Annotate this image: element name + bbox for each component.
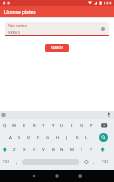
staticText: R (33, 122, 36, 128)
staticText: License plates (4, 9, 36, 15)
button[interactable]: ! (77, 144, 87, 154)
button[interactable]: Y (48, 120, 58, 130)
button[interactable]: D (24, 132, 34, 142)
staticText: T (42, 122, 45, 128)
button[interactable] (5, 22, 109, 36)
staticText: Q (3, 122, 7, 128)
button[interactable]: E (19, 120, 29, 130)
staticText: F (37, 134, 40, 140)
staticText: P (90, 122, 93, 128)
staticText: G (46, 134, 50, 140)
staticText: ? (90, 146, 92, 152)
staticText: A (9, 134, 12, 140)
button[interactable]: Z (9, 144, 19, 154)
button[interactable]: R (29, 120, 39, 130)
button[interactable] (48, 170, 66, 182)
button[interactable]: O (77, 120, 87, 130)
staticText: C (33, 146, 36, 152)
staticText: O (80, 122, 84, 128)
staticText: Z (13, 146, 16, 152)
button[interactable]: A (5, 132, 15, 142)
staticText: N (60, 146, 64, 152)
button[interactable]: M (67, 144, 77, 154)
staticText: S (18, 134, 21, 140)
button[interactable]: L (81, 132, 91, 142)
staticText: V (42, 146, 45, 152)
staticText: , (16, 159, 18, 165)
button[interactable]: W (9, 120, 19, 130)
staticText: I (71, 122, 73, 128)
staticText: D (27, 134, 31, 140)
staticText: K (76, 134, 79, 140)
button[interactable] (26, 170, 44, 182)
button[interactable] (71, 170, 89, 182)
staticText: ! (81, 146, 83, 152)
staticText: H (56, 134, 60, 140)
staticText: Plate number (8, 24, 28, 28)
button[interactable]: F (33, 132, 43, 142)
button[interactable]: Q (0, 120, 10, 130)
button[interactable] (101, 27, 105, 31)
button[interactable]: T (38, 120, 48, 130)
staticText: U (60, 122, 64, 128)
button[interactable] (82, 157, 92, 167)
staticText: X (23, 146, 26, 152)
button[interactable]: ?123 (100, 157, 110, 167)
staticText: W (12, 122, 17, 128)
button[interactable]: G (43, 132, 53, 142)
button[interactable]: ? (86, 144, 96, 154)
button[interactable]: . (89, 157, 99, 167)
button[interactable]: B (48, 144, 58, 154)
staticText: . (93, 159, 95, 165)
button[interactable]: X (19, 144, 29, 154)
staticText: VKE63 (8, 30, 20, 35)
staticText: B (52, 146, 55, 152)
button[interactable] (99, 133, 108, 142)
button[interactable]: K (72, 132, 82, 142)
button[interactable]: SEARCH (45, 44, 69, 52)
button[interactable]: N (57, 144, 67, 154)
button[interactable] (98, 121, 112, 130)
button[interactable]: S (14, 132, 24, 142)
staticText: E (23, 122, 26, 128)
button[interactable]: H (53, 132, 63, 142)
button[interactable]: P (86, 120, 96, 130)
staticText: ?123 (102, 160, 109, 164)
button[interactable]: I (67, 120, 77, 130)
staticText: L (85, 134, 88, 140)
staticText: J (66, 134, 68, 140)
button[interactable]: J (62, 132, 72, 142)
staticText: Y (52, 122, 55, 128)
staticText: ?123 (3, 160, 10, 164)
staticText: SEARCH (51, 46, 63, 50)
button[interactable]: U (57, 120, 67, 130)
staticText: M (70, 146, 74, 152)
button[interactable]: , (12, 157, 22, 167)
button[interactable]: V (38, 144, 48, 154)
button[interactable]: C (29, 144, 39, 154)
button[interactable]: ?123 (1, 157, 11, 167)
